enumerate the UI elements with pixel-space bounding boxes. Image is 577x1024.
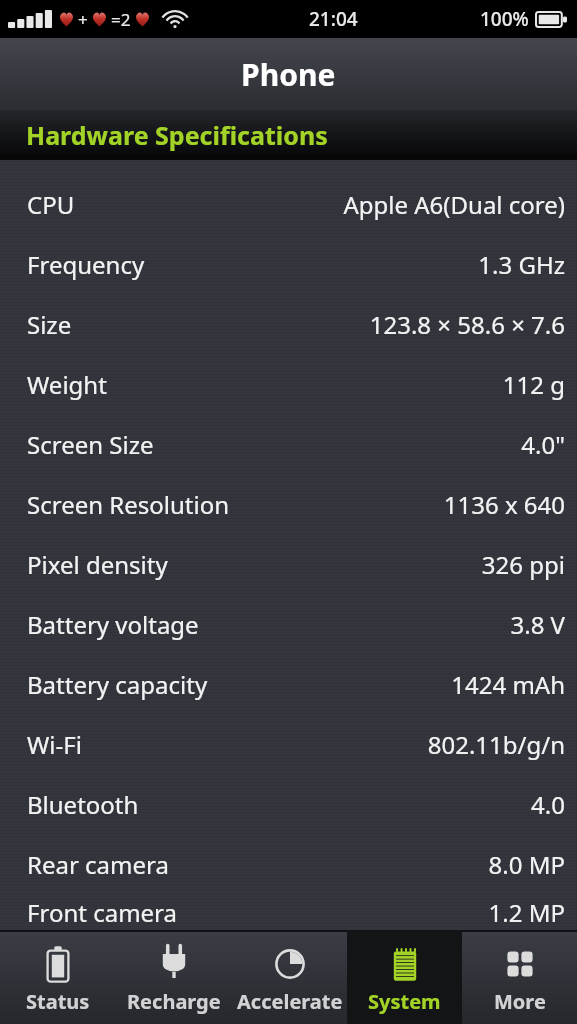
staticText: Size — [27, 308, 72, 341]
staticText: 802.11b/g/n — [427, 728, 565, 761]
staticText: Pixel density — [27, 548, 168, 581]
staticText: 112 g — [502, 368, 565, 401]
button[interactable]: Front camera — [0, 894, 577, 930]
staticText: 1424 mAh — [451, 668, 565, 701]
staticText: Frequency — [27, 248, 145, 281]
staticText: More — [494, 988, 546, 1015]
staticText: =2 — [111, 8, 131, 31]
staticText: Bluetooth — [27, 788, 139, 821]
staticText: 4.0" — [521, 428, 565, 461]
button[interactable]: Rear camera — [0, 834, 577, 894]
button[interactable]: Bluetooth — [0, 774, 577, 834]
staticText: 8.0 MP — [488, 848, 565, 881]
staticText: Apple A6(Dual core) — [343, 188, 565, 221]
button[interactable]: Pixel density — [0, 534, 577, 594]
staticText: 1.3 GHz — [478, 248, 565, 281]
staticText: Battery voltage — [27, 608, 199, 641]
staticText: 3.8 V — [510, 608, 565, 641]
staticText: Front camera — [27, 896, 177, 929]
button[interactable]: Accelerate — [232, 930, 347, 1024]
staticText: Phone — [241, 54, 336, 95]
staticText: 1.2 MP — [488, 896, 565, 929]
staticText: Accelerate — [237, 988, 343, 1015]
button[interactable]: Frequency — [0, 234, 577, 294]
staticText: Battery capacity — [27, 668, 208, 701]
button[interactable]: Battery capacity — [0, 654, 577, 714]
staticText: 100% — [480, 6, 529, 32]
button[interactable]: Screen Size — [0, 414, 577, 474]
staticText: Wi-Fi — [27, 728, 82, 761]
staticText: 123.8 × 58.6 × 7.6 — [369, 308, 565, 341]
staticText: Rear camera — [27, 848, 169, 881]
staticText: 21:04 — [309, 6, 358, 32]
staticText: Weight — [27, 368, 107, 401]
button[interactable]: CPU — [0, 160, 577, 234]
staticText: Screen Size — [27, 428, 154, 461]
staticText: 4.0 — [531, 788, 565, 821]
staticText: Recharge — [127, 988, 221, 1015]
staticText: Status — [26, 988, 90, 1015]
staticText: 326 ppi — [481, 548, 565, 581]
button[interactable]: Weight — [0, 354, 577, 414]
staticText: System — [368, 988, 441, 1015]
button[interactable]: Wi-Fi — [0, 714, 577, 774]
staticText: 1136 x 640 — [443, 488, 565, 521]
staticText: CPU — [27, 188, 75, 221]
button[interactable]: Recharge — [116, 930, 232, 1024]
button[interactable]: System — [347, 930, 462, 1024]
staticText: + — [78, 8, 88, 31]
staticText: Hardware Specifications — [26, 118, 328, 152]
staticText: Screen Resolution — [27, 488, 229, 521]
button[interactable]: Battery voltage — [0, 594, 577, 654]
button[interactable]: Size — [0, 294, 577, 354]
button[interactable]: Screen Resolution — [0, 474, 577, 534]
button[interactable]: Status — [0, 930, 116, 1024]
button[interactable]: More — [462, 930, 577, 1024]
